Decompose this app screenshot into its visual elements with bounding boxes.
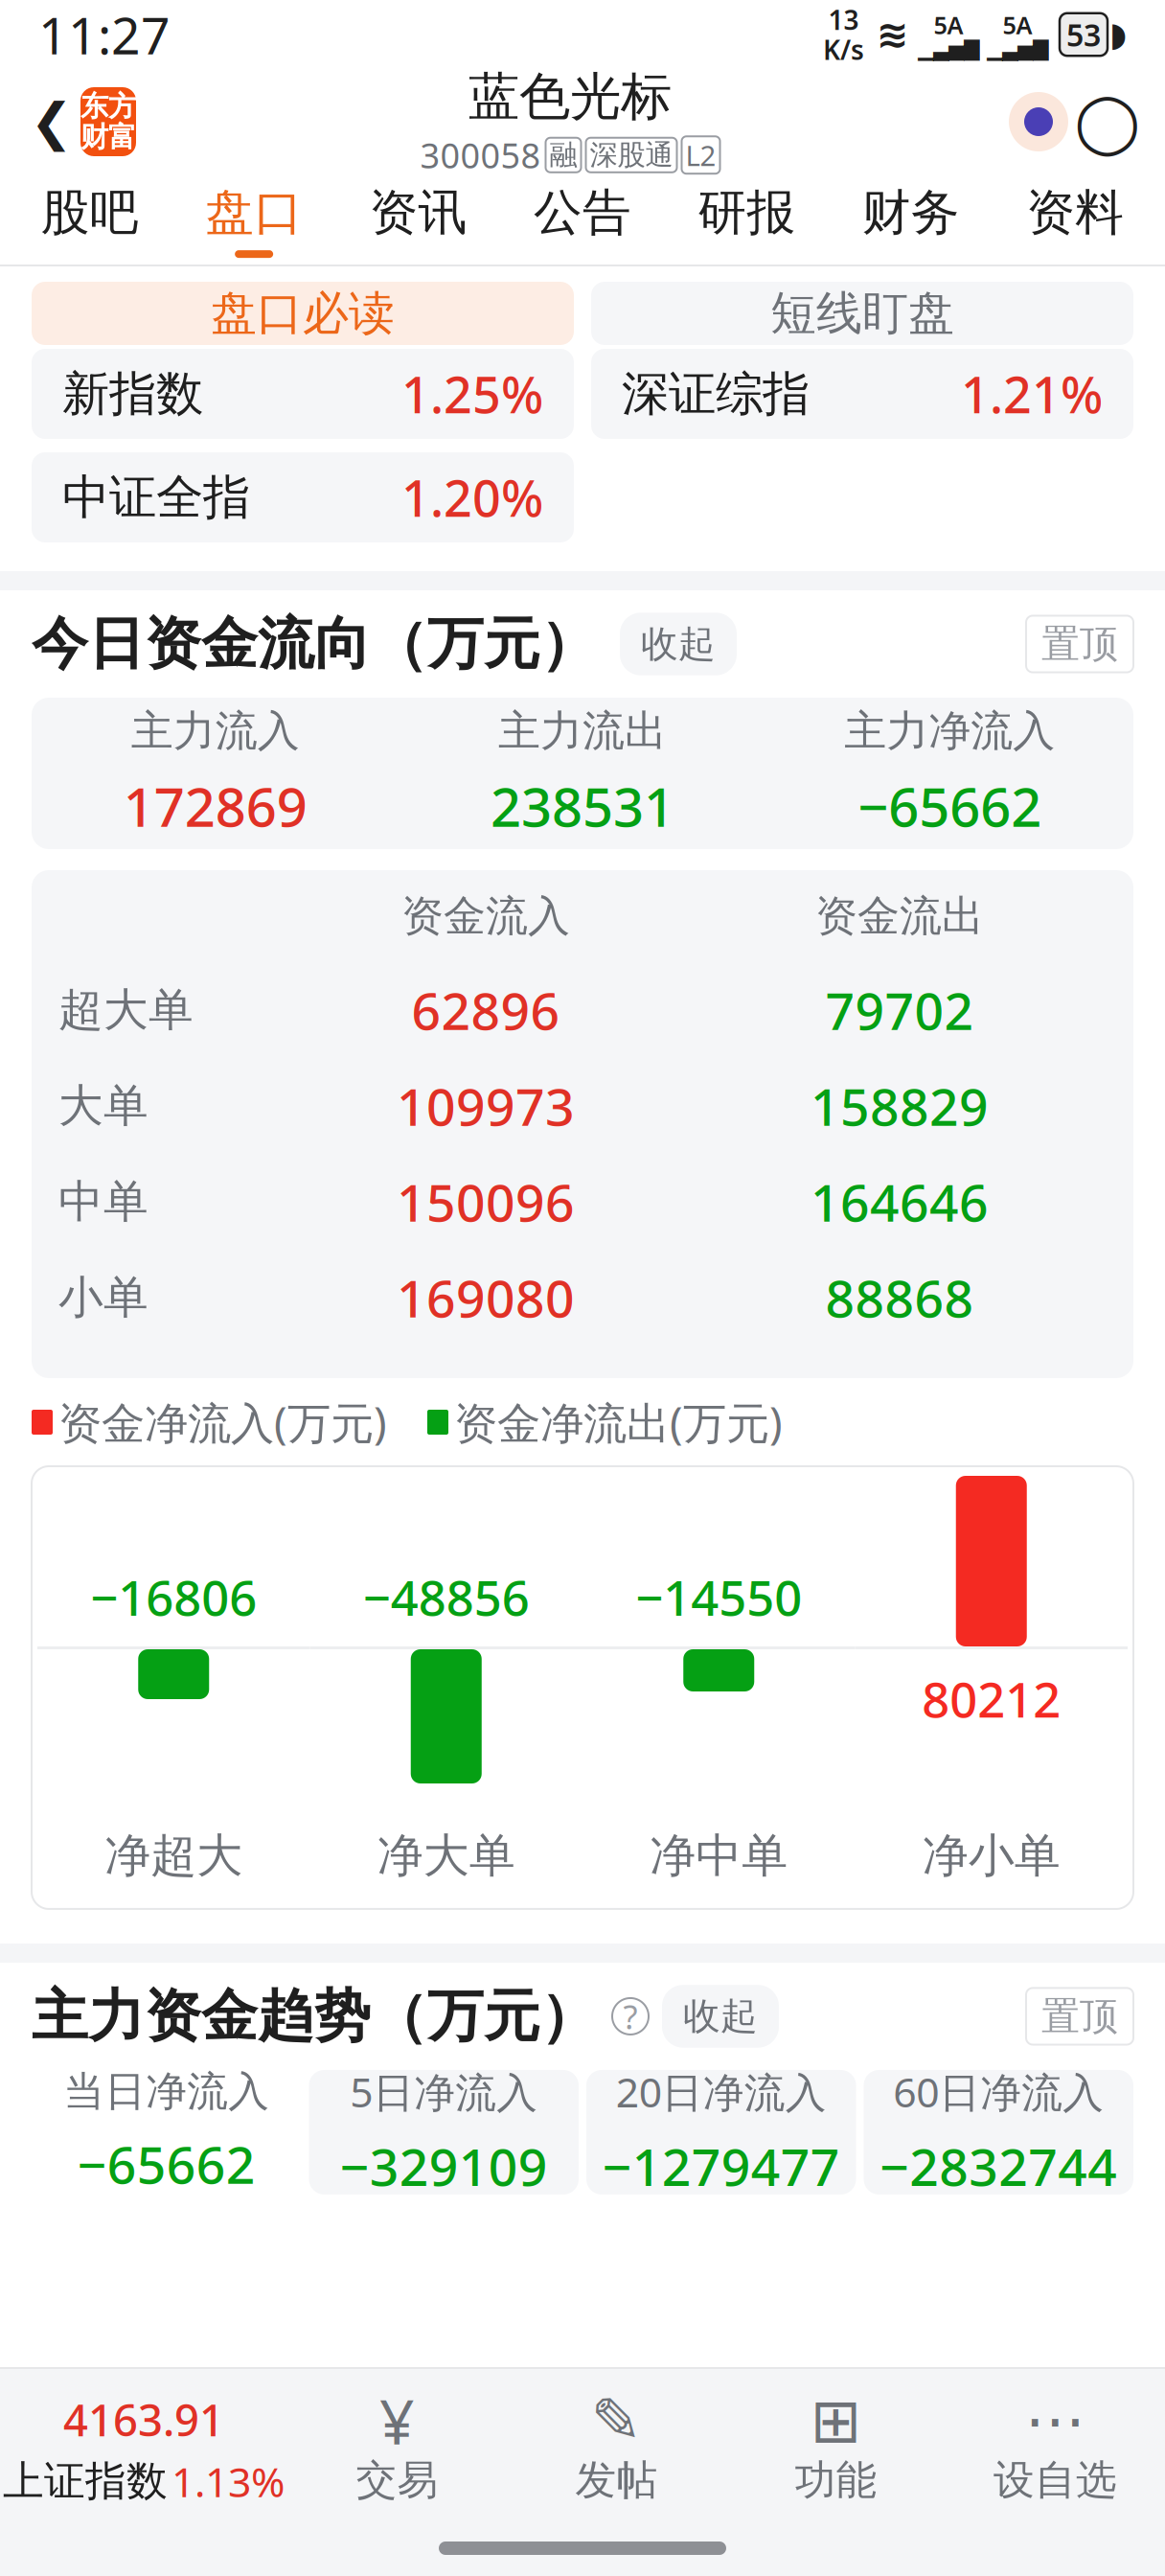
- button[interactable]: 5日净流入: [309, 2070, 579, 2195]
- button[interactable]: Back: [23, 83, 80, 160]
- button[interactable]: 资料: [993, 174, 1157, 266]
- staticText: 1.13%: [171, 2454, 285, 2508]
- button[interactable]: Search: [1073, 83, 1142, 160]
- staticText: 置顶: [1041, 1993, 1118, 2040]
- staticText: 主力流出: [498, 705, 667, 757]
- staticText: L2: [685, 136, 716, 174]
- staticText: 公告: [534, 183, 631, 243]
- staticText: 蓝色光标: [468, 65, 672, 128]
- staticText: 资讯: [369, 183, 467, 243]
- button[interactable]: 研报: [665, 174, 829, 266]
- staticText: 150096: [397, 1168, 575, 1236]
- button[interactable]: 深证综指: [591, 349, 1133, 439]
- button[interactable]: ⊞: [726, 2394, 946, 2505]
- button[interactable]: East Money: [80, 87, 136, 156]
- button[interactable]: 置顶: [1026, 616, 1133, 672]
- staticText: 5A: [1003, 9, 1032, 41]
- staticText: 158829: [811, 1072, 989, 1140]
- staticText: 中单: [58, 1174, 148, 1229]
- button[interactable]: ⋯: [946, 2394, 1165, 2505]
- button[interactable]: ✎: [507, 2394, 726, 2505]
- staticText: 5A: [934, 9, 963, 41]
- button[interactable]: 资讯: [336, 174, 500, 266]
- staticText: ◯: [1074, 88, 1141, 155]
- staticText: 深股通: [590, 138, 673, 172]
- staticText: 超大单: [58, 983, 194, 1037]
- staticText: 财务: [862, 183, 960, 243]
- staticText: 4163.91: [63, 2391, 224, 2448]
- staticText: ◗: [1109, 16, 1127, 53]
- button[interactable]: 公告: [500, 174, 665, 266]
- staticText: 5日净流入: [350, 2064, 538, 2119]
- staticText: 资料: [1026, 183, 1124, 243]
- staticText: 164646: [811, 1168, 989, 1236]
- staticText: ⊞: [810, 2386, 862, 2455]
- staticText: 盘口: [205, 183, 303, 243]
- staticText: ?: [623, 1994, 638, 2038]
- button[interactable]: AI assistant: [1004, 87, 1073, 156]
- staticText: 融: [549, 138, 577, 172]
- staticText: 收起: [683, 1994, 758, 2039]
- staticText: 新指数: [62, 365, 203, 423]
- staticText: 短线盯盘: [770, 285, 954, 342]
- staticText: 今日资金流向（万元）: [32, 609, 597, 679]
- button[interactable]: 中证全指: [32, 452, 574, 542]
- staticText: 深证综指: [622, 365, 810, 423]
- staticText: 53: [1066, 14, 1101, 55]
- staticText: 当日净流入: [63, 2066, 269, 2117]
- staticText: −65662: [858, 770, 1042, 842]
- staticText: 20日净流入: [616, 2064, 827, 2119]
- button[interactable]: 4163.91: [0, 2391, 287, 2508]
- staticText: 净中单: [650, 1828, 788, 1884]
- button[interactable]: 60日净流入: [864, 2070, 1133, 2195]
- staticText: ¥: [379, 2380, 415, 2461]
- staticText: 88868: [825, 1264, 974, 1332]
- staticText: K/s: [823, 32, 864, 67]
- staticText: 大单: [58, 1078, 148, 1133]
- staticText: 交易: [356, 2455, 438, 2505]
- staticText: 1.20%: [401, 464, 543, 531]
- staticText: 股吧: [41, 183, 139, 243]
- button[interactable]: ¥: [287, 2394, 507, 2505]
- staticText: 238531: [491, 770, 674, 842]
- staticText: 净小单: [922, 1828, 1060, 1884]
- button[interactable]: 股吧: [8, 174, 172, 266]
- staticText: 发帖: [575, 2455, 658, 2505]
- staticText: 中证全指: [62, 468, 250, 526]
- button[interactable]: 新指数: [32, 349, 574, 439]
- button[interactable]: 财务: [829, 174, 993, 266]
- staticText: 财富: [80, 120, 136, 154]
- staticText: −14550: [635, 1565, 802, 1629]
- staticText: 300058: [420, 132, 541, 178]
- staticText: ▁▃▅▇: [987, 37, 1048, 60]
- staticText: ⋯: [1025, 2386, 1086, 2455]
- staticText: 1.25%: [401, 361, 543, 427]
- staticText: 资金净流入(万元): [58, 1393, 387, 1451]
- button[interactable]: 短线盯盘: [591, 282, 1133, 345]
- button[interactable]: 20日净流入: [586, 2070, 856, 2195]
- staticText: 资金流出: [815, 890, 984, 942]
- staticText: 主力资金趋势（万元）: [32, 1982, 597, 2051]
- staticText: 169080: [397, 1264, 575, 1332]
- staticText: 小单: [58, 1270, 148, 1325]
- staticText: 功能: [795, 2455, 877, 2505]
- staticText: −329109: [340, 2132, 548, 2200]
- staticText: 置顶: [1041, 620, 1118, 667]
- button[interactable]: 当日净流入: [32, 2070, 301, 2195]
- button[interactable]: 盘口: [172, 174, 336, 266]
- button[interactable]: 置顶: [1026, 1988, 1133, 2045]
- staticText: 资金流入: [401, 890, 570, 942]
- staticText: 设自选: [994, 2455, 1117, 2505]
- staticText: −2832744: [880, 2132, 1117, 2200]
- staticText: 收起: [641, 621, 716, 667]
- staticText: 13: [828, 2, 859, 37]
- staticText: ✎: [591, 2386, 642, 2455]
- staticText: ≋: [877, 13, 909, 56]
- staticText: 净超大: [105, 1828, 243, 1884]
- staticText: ❮: [30, 93, 73, 151]
- button[interactable]: 收起: [662, 1985, 779, 2048]
- staticText: −48856: [363, 1565, 530, 1629]
- button[interactable]: 收起: [620, 613, 737, 675]
- staticText: 60日净流入: [893, 2064, 1104, 2119]
- button[interactable]: 盘口必读: [32, 282, 574, 345]
